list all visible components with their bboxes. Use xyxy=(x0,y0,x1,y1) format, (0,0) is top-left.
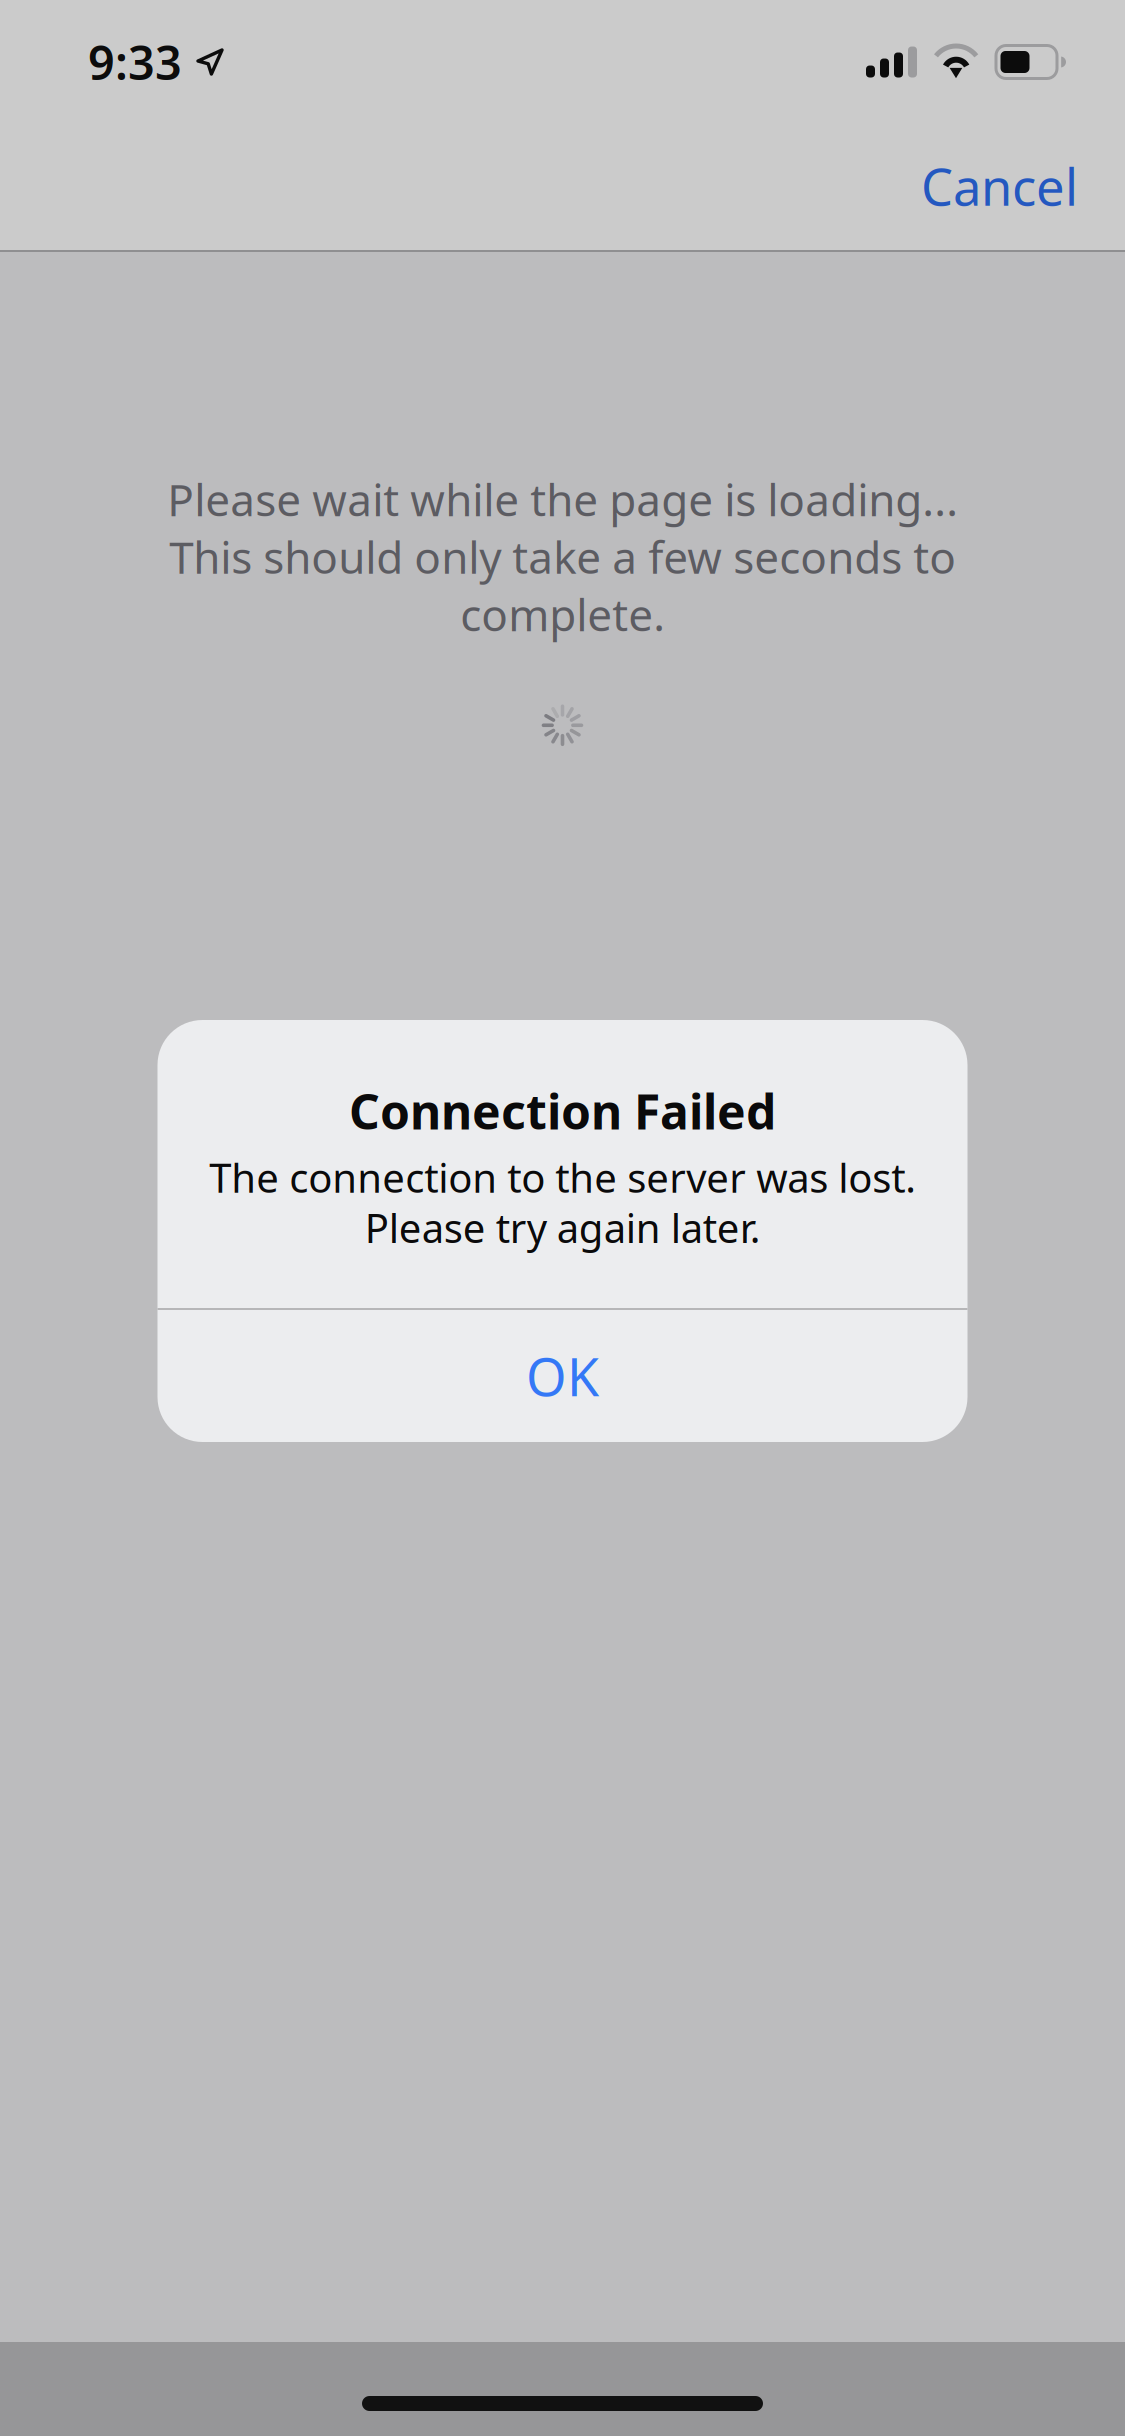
button[interactable]: Cancel xyxy=(897,136,1102,236)
staticText: Please wait while the page is loading...… xyxy=(167,470,958,643)
button[interactable]: OK xyxy=(157,1310,967,1442)
staticText: OK xyxy=(526,1341,599,1411)
staticText: 9:33 xyxy=(88,31,182,93)
staticText: The connection to the server was lost. P… xyxy=(209,1151,916,1254)
staticText: Cancel xyxy=(921,152,1078,220)
staticText: Connection Failed xyxy=(349,1079,776,1143)
